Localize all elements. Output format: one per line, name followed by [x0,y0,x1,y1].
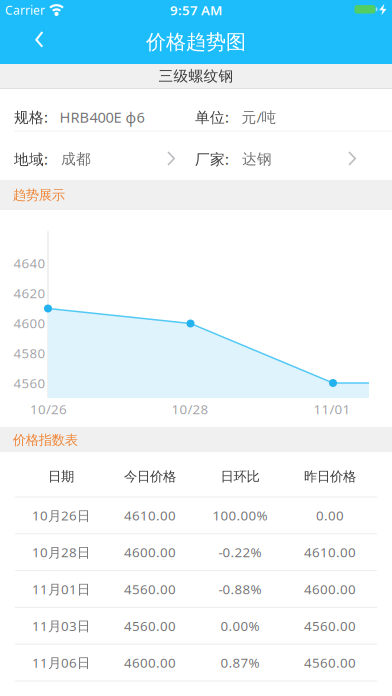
staticText: 0.00 [316,506,344,524]
staticText: 4560.00 [124,617,176,635]
staticText: 4560.00 [304,654,356,671]
staticText: 10月26日 [32,506,90,524]
staticText: -0.88% [218,580,261,598]
staticText: 10/28 [171,400,208,418]
staticText: 三级螺纹钢 [158,67,233,85]
staticText: 达钢 [242,150,272,168]
staticText: 4610.00 [124,506,176,524]
staticText: 100.00% [212,506,267,524]
staticText: 11/01 [313,400,350,418]
staticText: 价格趋势图 [146,30,246,54]
staticText: 4600.00 [304,580,356,598]
staticText: 4600.00 [124,654,176,671]
staticText: 趋势展示 [13,187,65,203]
staticText: 4600.00 [124,543,176,561]
staticText: 今日价格 [124,468,176,485]
staticText: 10/26 [30,400,67,418]
staticText: 0.00% [220,617,259,635]
staticText: 厂家: [195,149,229,169]
button[interactable]: 厂家: [186,135,392,180]
staticText: 单位: [195,107,229,127]
staticText: 9:57 AM [170,1,222,19]
staticText: 4620 [13,284,45,302]
staticText: Carrier [5,2,45,18]
staticText: 成都 [61,150,91,168]
staticText: 11月06日 [32,654,90,671]
staticText: 元/吨 [241,107,276,127]
staticText: -0.22% [218,543,261,561]
staticText: 日环比 [220,468,259,485]
staticText: 4580 [13,344,45,362]
staticText: 昨日价格 [304,468,356,485]
staticText: 4560 [13,374,45,392]
staticText: 0.87% [220,654,259,671]
staticText: 地域: [14,149,48,169]
staticText: 11月03日 [32,617,90,635]
staticText: 规格: [14,107,48,127]
staticText: 日期 [48,468,74,485]
staticText: 10月28日 [32,543,90,561]
staticText: 4600 [13,314,45,332]
staticText: 4640 [13,254,45,272]
staticText: 4560.00 [124,580,176,598]
button[interactable]: Back [18,20,62,64]
staticText: 11月01日 [32,580,90,598]
staticText: 4610.00 [304,543,356,561]
staticText: 价格指数表 [13,432,78,448]
staticText: HRB400E φ6 [59,107,144,127]
staticText: 4560.00 [304,617,356,635]
button[interactable]: 地域: [0,135,186,180]
